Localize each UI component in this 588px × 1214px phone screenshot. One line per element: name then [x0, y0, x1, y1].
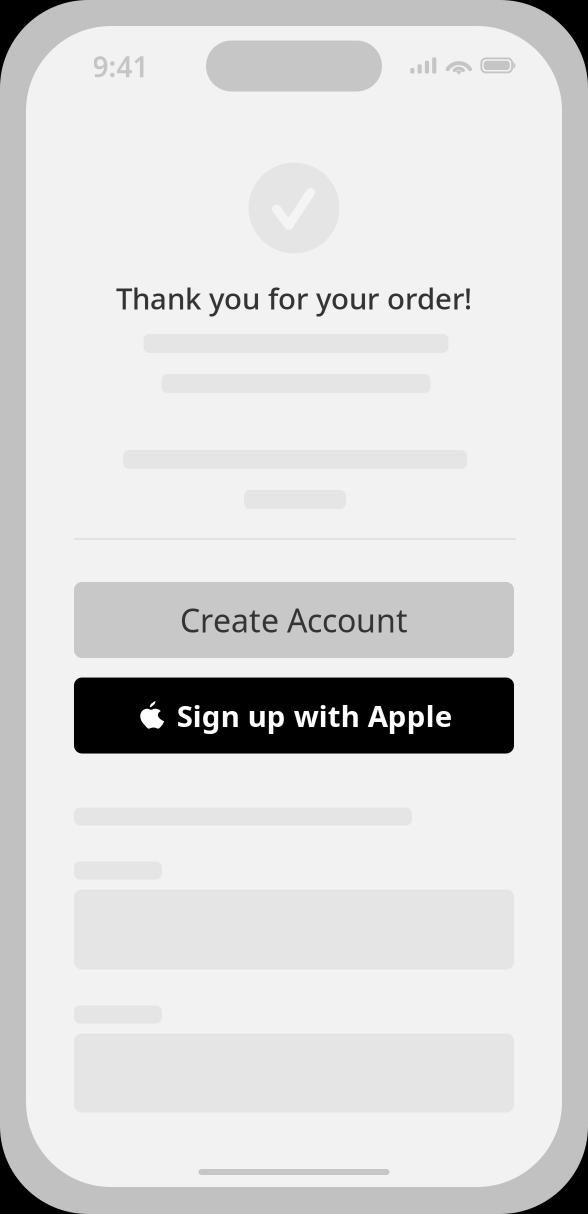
staticText: Create Account — [180, 599, 408, 641]
button[interactable]: Sign up with Apple — [74, 677, 514, 753]
staticText: 9:41 — [92, 48, 148, 85]
staticText: Sign up with Apple — [177, 696, 453, 735]
staticText: Thank you for your order! — [116, 278, 472, 317]
button[interactable]: Create Account — [74, 582, 514, 658]
